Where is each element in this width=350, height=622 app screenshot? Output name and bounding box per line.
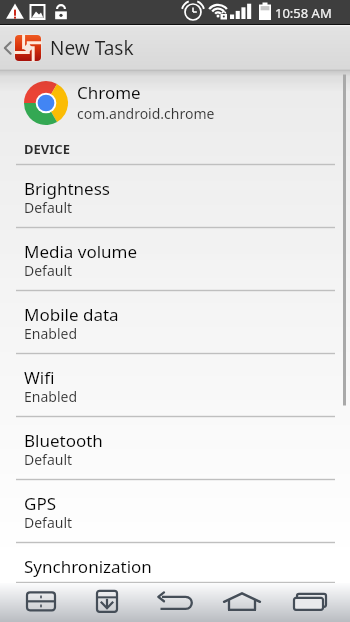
button[interactable]: Media volume bbox=[0, 228, 350, 291]
button[interactable]: GPS bbox=[0, 480, 350, 543]
button[interactable]: Navigate up bbox=[2, 35, 43, 61]
staticText: Bluetooth bbox=[24, 429, 103, 452]
button[interactable]: Home bbox=[210, 583, 280, 622]
button[interactable]: Synchronization bbox=[0, 543, 350, 583]
staticText: 10:58 AM bbox=[275, 4, 332, 22]
button[interactable]: Wifi bbox=[0, 354, 350, 417]
staticText: DEVICE bbox=[24, 140, 70, 158]
staticText: Default bbox=[24, 261, 73, 280]
button[interactable]: Recent apps bbox=[280, 583, 350, 622]
staticText: Default bbox=[24, 450, 73, 469]
staticText: Enabled bbox=[24, 324, 78, 343]
staticText: Brightness bbox=[24, 177, 110, 200]
button[interactable]: Dual window bbox=[0, 583, 70, 622]
button[interactable]: Capture plus bbox=[70, 583, 140, 622]
button[interactable]: Bluetooth bbox=[0, 417, 350, 480]
staticText: Default bbox=[24, 513, 73, 532]
button[interactable]: Mobile data bbox=[0, 291, 350, 354]
staticText: GPS bbox=[24, 492, 56, 515]
staticText: Chrome bbox=[77, 81, 141, 104]
staticText: Default bbox=[24, 198, 73, 217]
button[interactable]: Chrome bbox=[0, 71, 350, 135]
staticText: Synchronization bbox=[24, 555, 152, 578]
button[interactable]: Brightness bbox=[0, 165, 350, 228]
button[interactable]: Back bbox=[140, 583, 210, 622]
staticText: com.android.chrome bbox=[77, 104, 215, 123]
staticText: Wifi bbox=[24, 366, 55, 389]
staticText: Media volume bbox=[24, 240, 138, 263]
staticText: Mobile data bbox=[24, 303, 119, 326]
staticText: New Task bbox=[50, 35, 134, 61]
staticText: Enabled bbox=[24, 387, 78, 406]
